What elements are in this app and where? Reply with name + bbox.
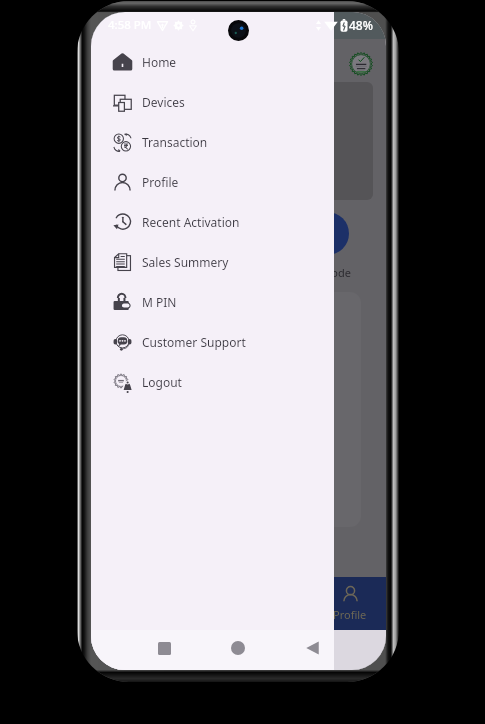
- staticText: Profile: [333, 607, 367, 622]
- staticText: QR Code: [306, 265, 351, 280]
- button[interactable]: Recent apps: [149, 633, 179, 663]
- staticText: Logout: [142, 374, 182, 390]
- staticText: Home: [142, 54, 177, 70]
- button[interactable]: Transaction: [91, 122, 334, 162]
- staticText: 48%: [349, 17, 373, 33]
- staticText: Transaction: [142, 134, 208, 150]
- staticText: Devices: [142, 94, 185, 110]
- button[interactable]: Devices: [91, 82, 334, 122]
- button[interactable]: Customer Support: [91, 322, 334, 362]
- staticText: Sales Summery: [142, 254, 229, 270]
- staticText: M PIN: [142, 294, 177, 310]
- button[interactable]: Logout: [91, 362, 334, 402]
- staticText: Recent Activation: [142, 214, 240, 230]
- button[interactable]: Recent Activation: [91, 202, 334, 242]
- button[interactable]: Profile: [314, 577, 386, 630]
- button[interactable]: Sales Summery: [91, 242, 334, 282]
- staticText: Profile: [142, 174, 179, 190]
- button[interactable]: Profile: [91, 162, 334, 202]
- button[interactable]: Home: [91, 42, 334, 82]
- button[interactable]: Home: [223, 633, 253, 663]
- staticText: Customer Support: [142, 334, 246, 350]
- staticText: 4:58 PM: [108, 17, 152, 33]
- button[interactable]: M PIN: [91, 282, 334, 322]
- button[interactable]: Back: [297, 633, 327, 663]
